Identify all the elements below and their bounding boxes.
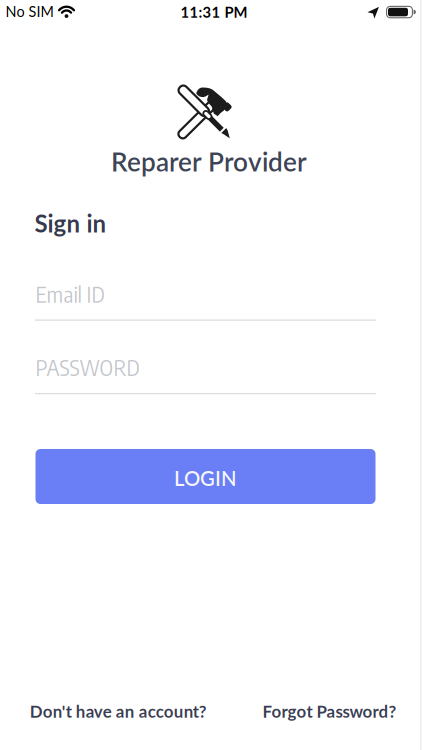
staticText: Forgot Password?	[262, 701, 396, 721]
staticText: Reparer Provider	[111, 146, 307, 177]
button[interactable]: Forgot Password?	[262, 701, 396, 721]
button[interactable]: PASSWORD	[35, 353, 376, 394]
staticText: LOGIN	[174, 466, 237, 490]
staticText: Sign in	[34, 209, 106, 238]
staticText: No SIM	[5, 3, 53, 20]
button[interactable]: Email ID	[35, 280, 376, 321]
staticText: Email ID	[35, 280, 104, 308]
button[interactable]: LOGIN	[35, 449, 375, 504]
staticText: 11:31 PM	[181, 3, 248, 21]
button[interactable]: Don't have an account?	[30, 701, 207, 721]
staticText: Don't have an account?	[30, 701, 207, 721]
staticText: PASSWORD	[35, 353, 139, 381]
